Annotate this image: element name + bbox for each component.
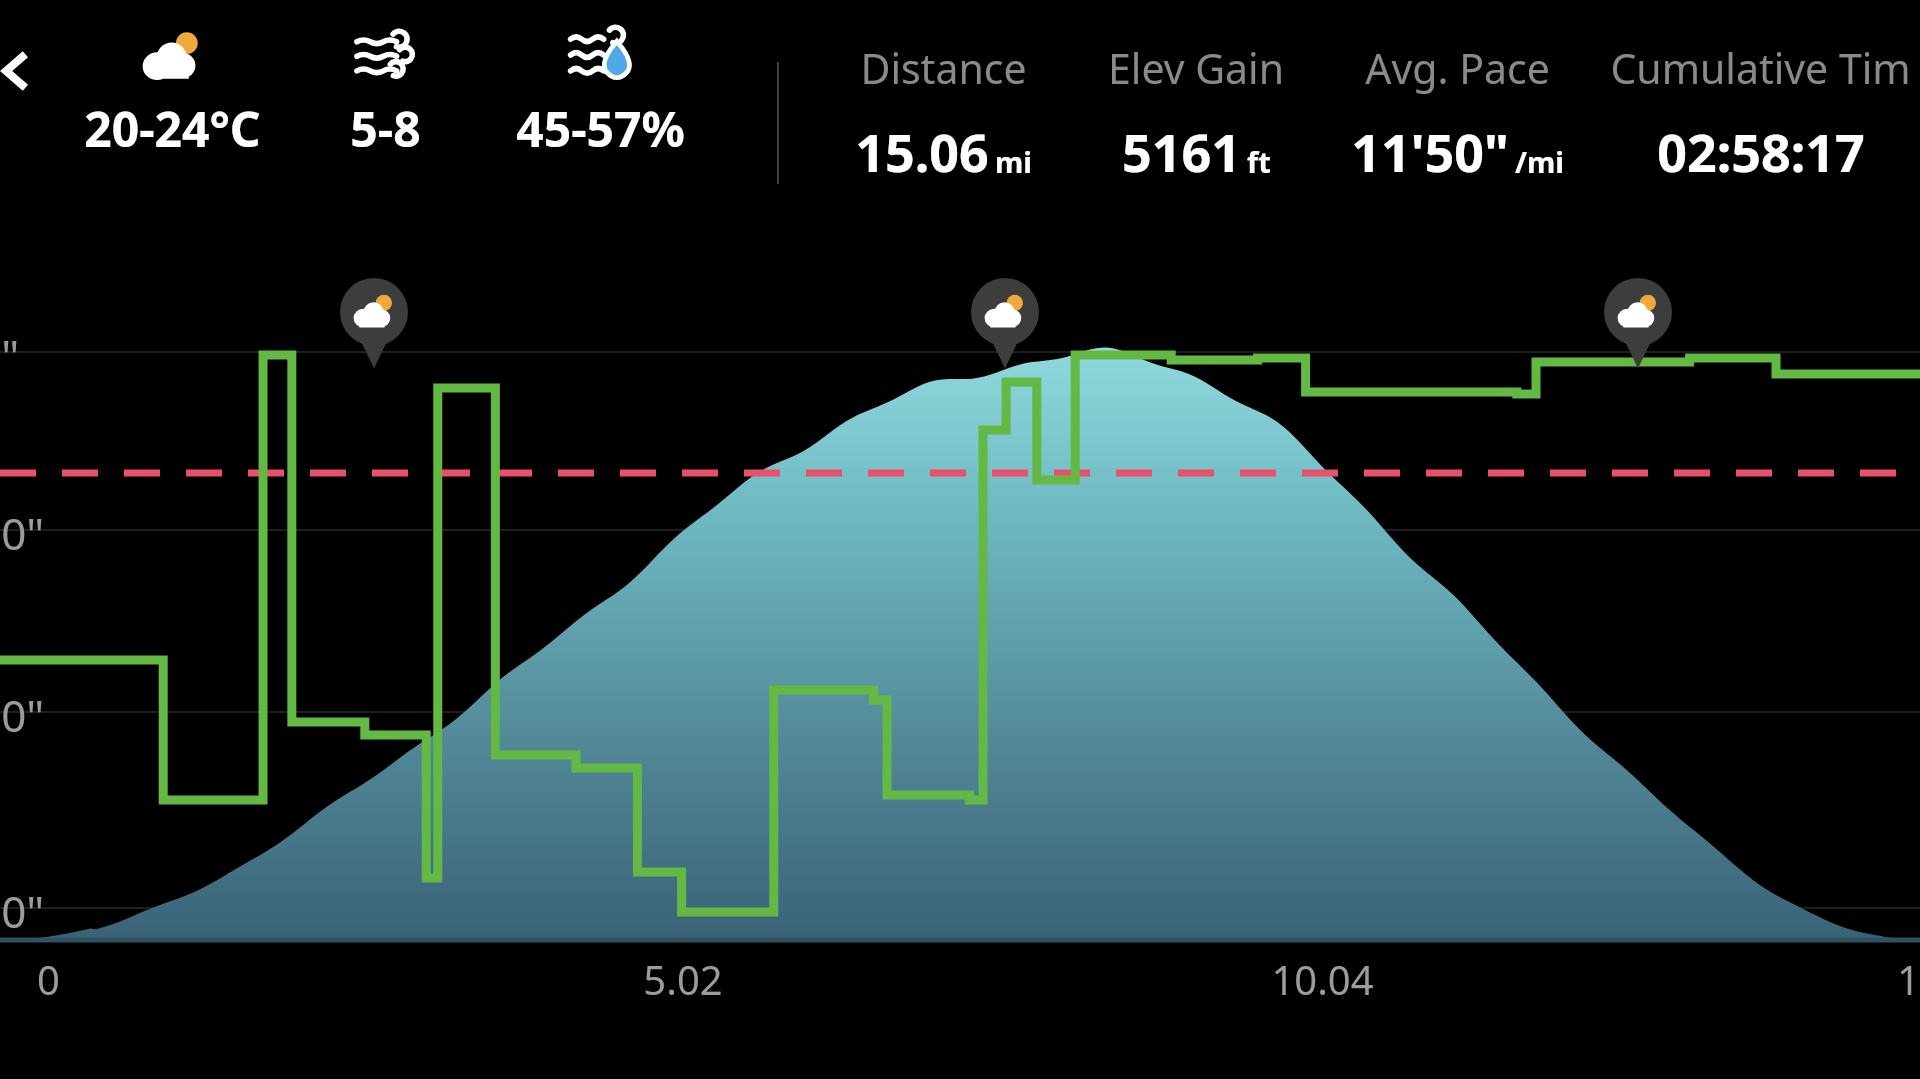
staticText: Distance: [860, 40, 1027, 96]
staticText: 5161: [1122, 116, 1241, 187]
button[interactable]: 45-57%: [490, 22, 710, 192]
staticText: 1: [1897, 952, 1920, 1006]
button[interactable]: Weather detail: [1604, 278, 1672, 366]
staticText: 10.04: [1271, 952, 1374, 1006]
staticText: 5.02: [643, 952, 723, 1006]
button[interactable]: Back: [0, 40, 48, 102]
button[interactable]: Distance: [768, 40, 1118, 188]
staticText: 20-24°C: [84, 96, 261, 161]
button[interactable]: Weather detail: [340, 278, 408, 366]
staticText: 45-57%: [516, 96, 685, 161]
staticText: 30": [0, 881, 45, 941]
button[interactable]: Cumulative Tim: [1585, 40, 1920, 188]
staticText: 0: [37, 952, 60, 1006]
staticText: 30": [0, 503, 45, 563]
staticText: 0": [0, 325, 20, 385]
staticText: 5-8: [350, 96, 421, 161]
staticText: Avg. Pace: [1365, 40, 1550, 96]
staticText: /mi: [1515, 142, 1564, 181]
staticText: Cumulative Tim: [1610, 40, 1911, 96]
staticText: mi: [995, 142, 1032, 181]
staticText: 02:58:17: [1657, 116, 1865, 187]
button[interactable]: 20-24°C: [62, 22, 282, 192]
staticText: Elev Gain: [1108, 40, 1284, 96]
staticText: 11'50": [1351, 116, 1509, 187]
staticText: 00": [0, 685, 45, 745]
button[interactable]: Avg. Pace: [1282, 40, 1632, 188]
button[interactable]: 5-8: [275, 22, 495, 192]
staticText: ft: [1247, 142, 1271, 181]
button[interactable]: Weather detail: [971, 278, 1039, 366]
button[interactable]: Elev Gain: [1021, 40, 1371, 188]
staticText: 15.06: [855, 116, 989, 187]
